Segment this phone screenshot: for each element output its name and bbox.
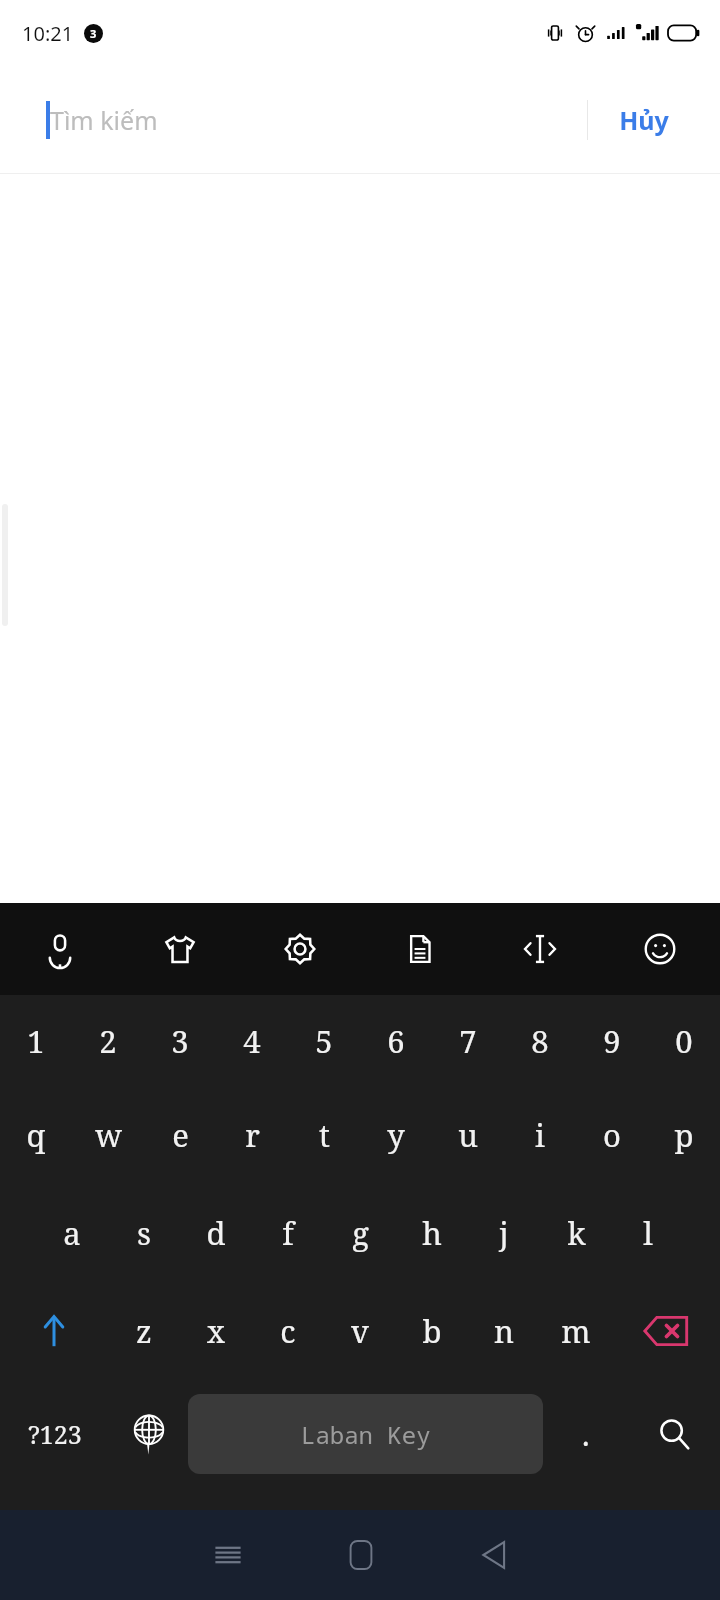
button[interactable]: Clipboard [360,903,480,995]
staticText: 1 [27,1020,45,1062]
button[interactable]: Backspace [612,1282,720,1380]
staticText: d [206,1212,226,1254]
staticText: n [494,1310,514,1352]
button[interactable]: 1 [0,995,72,1086]
staticText: 9 [603,1020,621,1062]
button[interactable]: x [180,1282,252,1380]
staticText: Laban Key [301,1418,431,1451]
button[interactable]: a [36,1184,108,1282]
staticText: k [567,1212,586,1254]
button[interactable]: n [468,1282,540,1380]
staticText: o [603,1114,621,1156]
staticText: i [535,1114,545,1156]
staticText: s [137,1212,151,1254]
staticText: m [561,1310,591,1352]
staticText: b [422,1310,442,1352]
staticText: Tìm kiếm [50,103,158,137]
staticText: 4 [243,1020,261,1062]
staticText: a [63,1212,81,1254]
staticText: e [172,1114,189,1156]
button[interactable]: Emoji [600,903,720,995]
button[interactable]: o [576,1086,648,1184]
button[interactable]: 0 [648,995,720,1086]
button[interactable]: d [180,1184,252,1282]
button[interactable]: y [360,1086,432,1184]
staticText: 3 [171,1020,189,1062]
staticText: y [387,1114,405,1156]
staticText: t [319,1114,330,1156]
button[interactable]: 3 [144,995,216,1086]
button[interactable]: 6 [360,995,432,1086]
button[interactable]: . [543,1380,628,1488]
button[interactable]: Home [294,1510,427,1600]
button[interactable]: h [396,1184,468,1282]
staticText: 10:21 [22,20,74,47]
button[interactable]: r [216,1086,288,1184]
staticText: h [422,1212,442,1254]
staticText: 3 [90,26,97,41]
button[interactable]: z [108,1282,180,1380]
staticText: l [643,1212,653,1254]
button[interactable]: m [540,1282,612,1380]
staticText: u [458,1114,478,1156]
button[interactable]: 4 [216,995,288,1086]
button[interactable]: 5 [288,995,360,1086]
staticText: 2 [99,1020,117,1062]
button[interactable]: q [0,1086,72,1184]
staticText: f [282,1212,294,1254]
button[interactable]: Back [427,1510,560,1600]
staticText: q [26,1114,46,1156]
button[interactable]: Search [628,1380,720,1488]
button[interactable]: e [144,1086,216,1184]
staticText: 0 [675,1020,693,1062]
button[interactable]: t [288,1086,360,1184]
button[interactable]: 9 [576,995,648,1086]
button[interactable]: c [252,1282,324,1380]
button[interactable]: Tìm kiếm [46,66,587,173]
button[interactable]: u [432,1086,504,1184]
button[interactable]: ?123 [0,1380,110,1488]
button[interactable]: Change language [110,1380,188,1488]
staticText: w [95,1114,122,1156]
staticText: 5 [315,1020,333,1062]
staticText: 7 [459,1020,477,1062]
button[interactable]: Themes [120,903,240,995]
button[interactable]: g [324,1184,396,1282]
staticText: . [582,1414,590,1455]
staticText: v [351,1310,369,1352]
staticText: Hủy [619,103,669,137]
button[interactable]: j [468,1184,540,1282]
button[interactable]: k [540,1184,612,1282]
staticText: ?123 [28,1417,82,1451]
button[interactable]: 7 [432,995,504,1086]
staticText: 8 [531,1020,549,1062]
button[interactable]: b [396,1282,468,1380]
staticText: z [136,1310,152,1352]
button[interactable]: v [324,1282,396,1380]
staticText: x [207,1310,225,1352]
button[interactable]: Shift [0,1282,108,1380]
button[interactable]: Settings [240,903,360,995]
button[interactable]: w [72,1086,144,1184]
button[interactable]: 8 [504,995,576,1086]
staticText: j [499,1212,509,1254]
button[interactable]: s [108,1184,180,1282]
staticText: p [674,1114,694,1156]
button[interactable]: Voice input [0,903,120,995]
button[interactable]: f [252,1184,324,1282]
button[interactable]: p [648,1086,720,1184]
button[interactable]: Recents [161,1510,294,1600]
button[interactable]: Cursor control [480,903,600,995]
staticText: r [245,1114,260,1156]
button[interactable]: 2 [72,995,144,1086]
staticText: 6 [387,1020,405,1062]
staticText: c [280,1310,296,1352]
button[interactable]: Hủy [588,66,700,173]
button[interactable]: Laban Key [188,1394,543,1474]
button[interactable]: i [504,1086,576,1184]
staticText: g [352,1212,369,1254]
button[interactable]: l [612,1184,684,1282]
